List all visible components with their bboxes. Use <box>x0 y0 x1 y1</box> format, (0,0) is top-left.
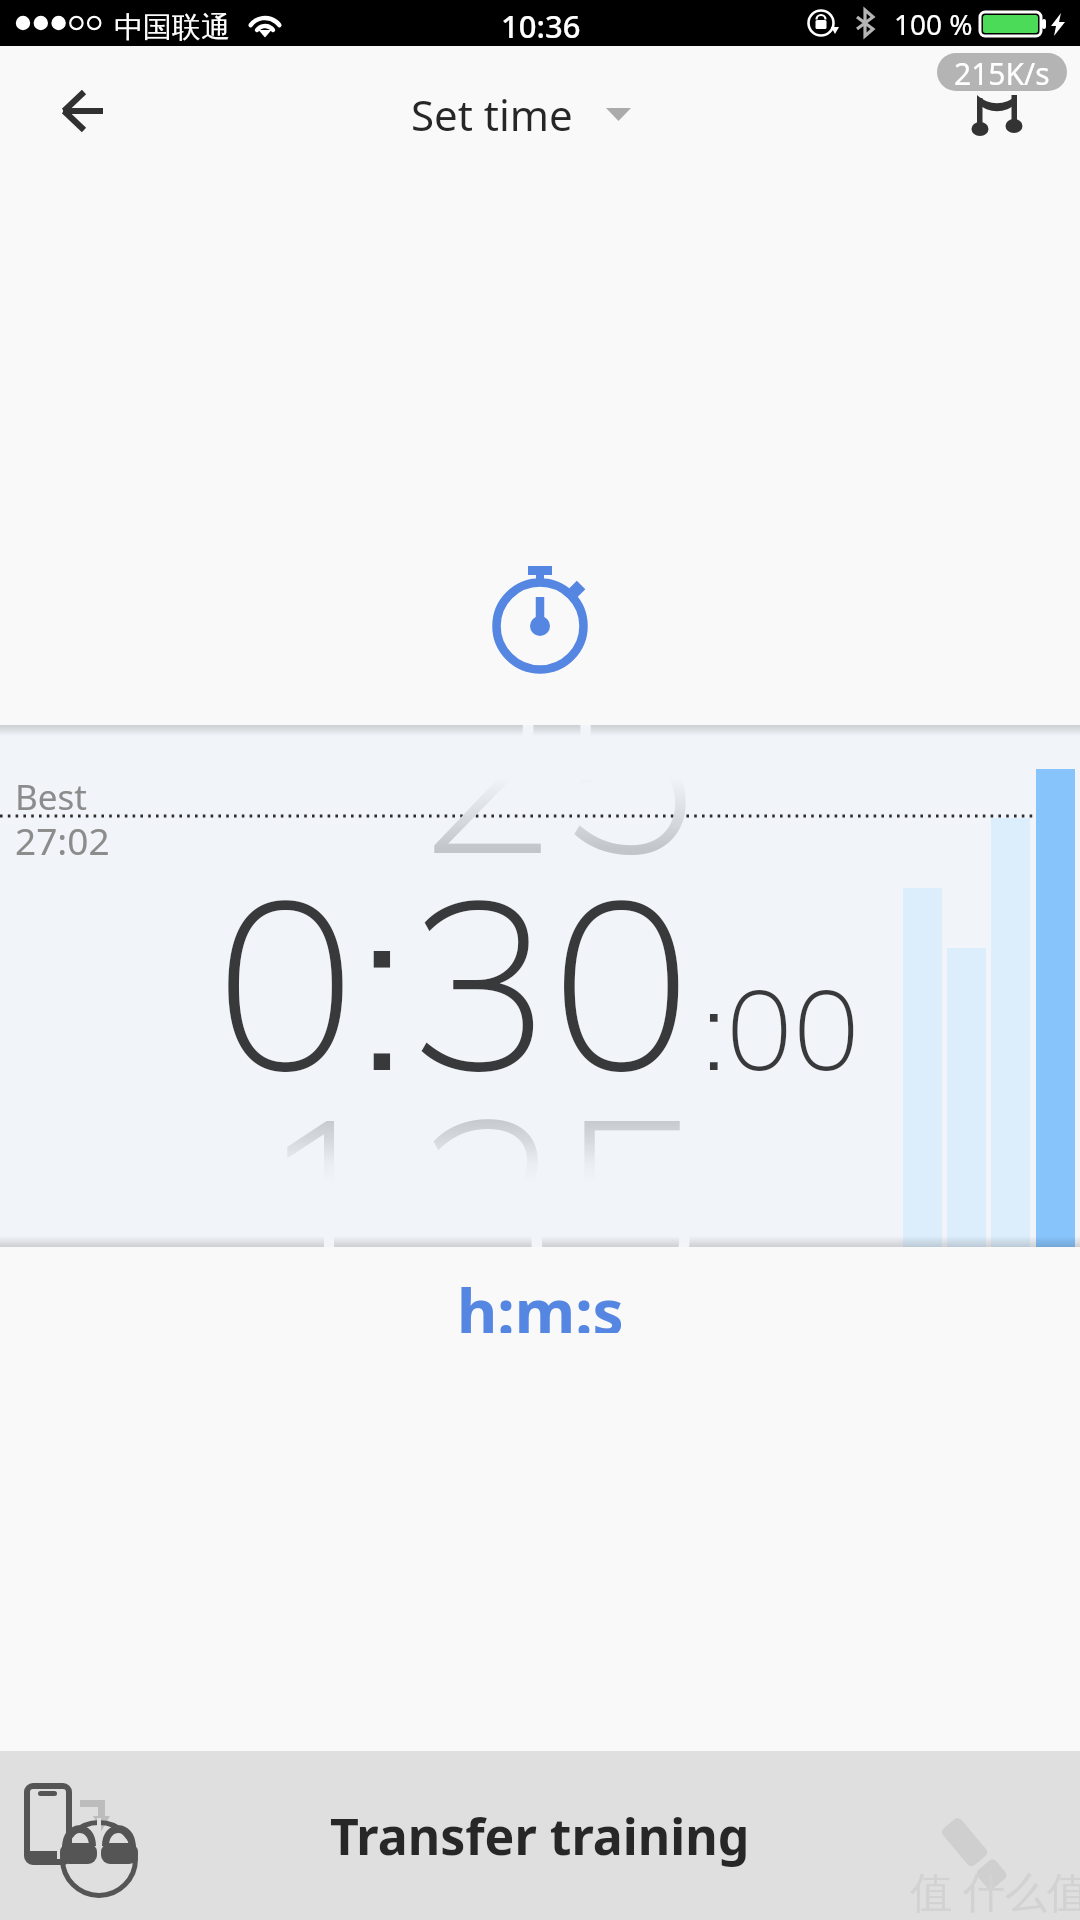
staticText: 25 <box>412 725 698 913</box>
staticText: 值 什么值得买 <box>910 1862 1080 1919</box>
staticText: :00 <box>702 957 861 1098</box>
button[interactable]: Set time <box>411 86 631 143</box>
staticText: 35 <box>416 1050 702 1247</box>
staticText: Best <box>15 773 87 821</box>
staticText: 100 % <box>894 5 973 43</box>
staticText: 10:36 <box>501 5 581 47</box>
staticText: 中国联通 <box>114 9 230 46</box>
staticText: 215K/s <box>954 53 1050 91</box>
staticText: Transfer training <box>330 1802 750 1870</box>
staticText: h:m:s <box>457 1269 624 1333</box>
button[interactable]: h:m:s <box>0 1269 1080 1333</box>
staticText: 0:30 <box>214 831 693 1130</box>
staticText: Set time <box>411 86 573 143</box>
button[interactable]: Transfer training <box>0 1751 1080 1920</box>
button[interactable]: Music <box>942 54 1052 164</box>
staticText: 1 <box>250 1050 393 1247</box>
button[interactable]: Back <box>28 56 138 166</box>
staticText: 27:02 <box>15 815 110 865</box>
